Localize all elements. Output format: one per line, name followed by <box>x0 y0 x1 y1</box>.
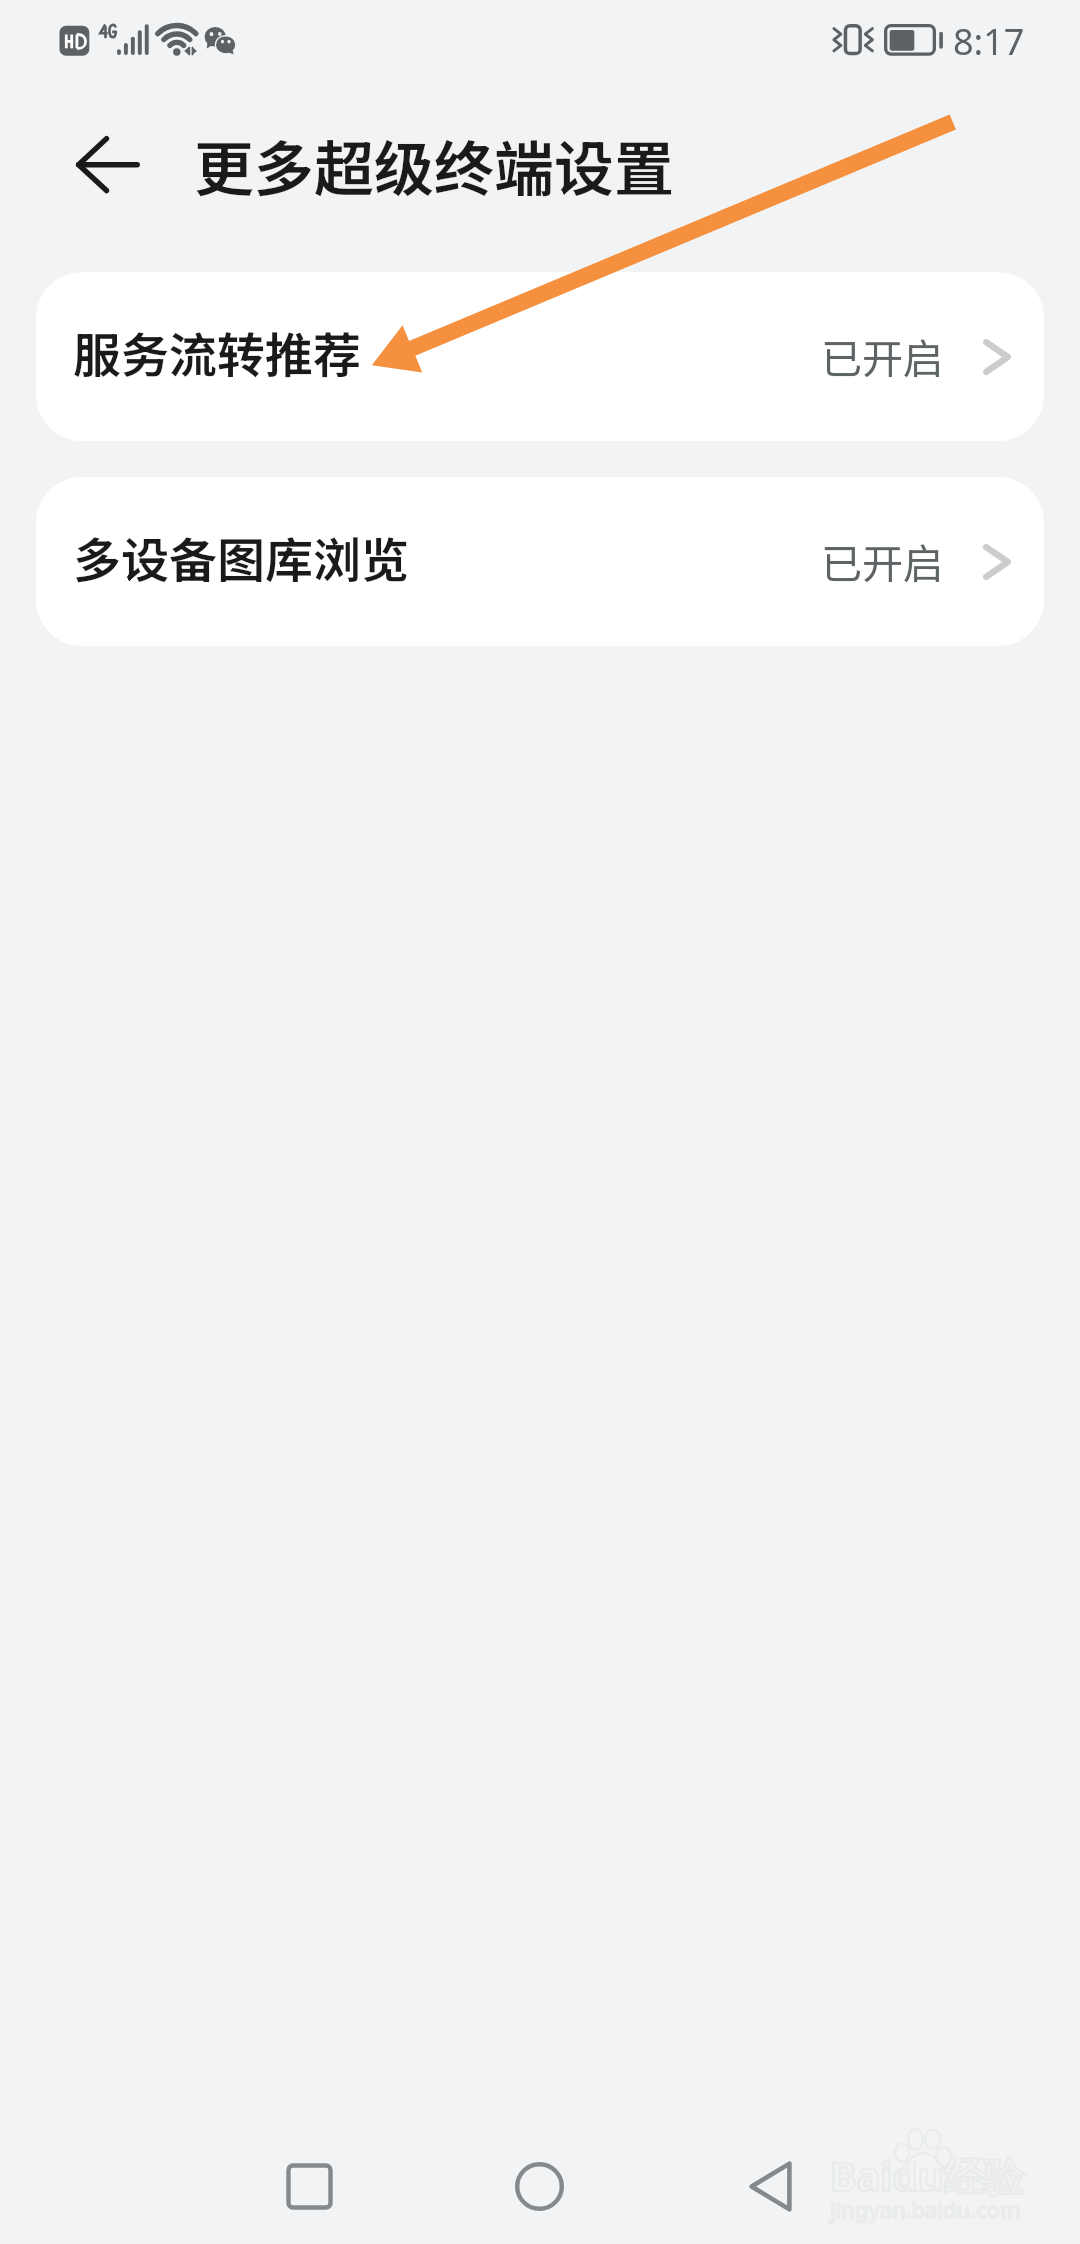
staticText: 服务流转推荐 <box>73 317 362 387</box>
button[interactable]: Back <box>690 2116 850 2244</box>
button[interactable]: Recent apps <box>229 2116 389 2244</box>
staticText: 多设备图库浏览 <box>73 522 410 592</box>
staticText: 8:17 <box>953 17 1025 66</box>
button[interactable]: 服务流转推荐 <box>36 272 1044 441</box>
staticText: 已开启 <box>821 531 944 590</box>
staticText: 已开启 <box>821 326 944 385</box>
button[interactable]: Back <box>48 116 166 212</box>
staticText: 更多超级终端设置 <box>194 121 674 208</box>
button[interactable]: Home <box>459 2116 619 2244</box>
button[interactable]: 多设备图库浏览 <box>36 477 1044 646</box>
